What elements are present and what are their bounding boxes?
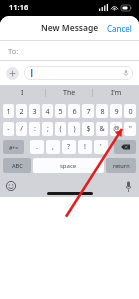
button[interactable]: 4 bbox=[42, 104, 53, 118]
button[interactable]: . bbox=[30, 140, 44, 154]
staticText: , bbox=[52, 142, 54, 152]
staticText: #+= bbox=[9, 144, 19, 151]
button[interactable]: 8 bbox=[96, 104, 108, 118]
staticText: 4 bbox=[45, 106, 50, 116]
staticText: 6 bbox=[72, 106, 77, 116]
button[interactable]: Emoji bbox=[6, 181, 16, 191]
button[interactable]: Backspace bbox=[114, 140, 136, 154]
staticText: / bbox=[20, 124, 23, 134]
staticText: 0 bbox=[128, 106, 133, 116]
button[interactable]: 2 bbox=[16, 104, 27, 118]
staticText: 7 bbox=[86, 106, 91, 116]
button[interactable]: #+= bbox=[3, 140, 24, 154]
other: Dictate bbox=[123, 70, 129, 76]
button[interactable]: : bbox=[29, 122, 40, 136]
button[interactable]: @ bbox=[110, 122, 122, 136]
button[interactable]: 6 bbox=[68, 104, 80, 118]
staticText: @ bbox=[113, 124, 120, 134]
staticText: 2 bbox=[19, 106, 24, 116]
staticText: 1 bbox=[6, 106, 11, 116]
staticText: New Message bbox=[41, 22, 99, 34]
button[interactable]: ABC bbox=[3, 158, 31, 173]
staticText: 9 bbox=[114, 106, 119, 116]
staticText: ( bbox=[59, 124, 62, 134]
button[interactable]: space bbox=[33, 158, 104, 173]
staticText: 5 bbox=[58, 106, 63, 116]
button[interactable]: Cancel bbox=[100, 19, 139, 38]
button[interactable]: 5 bbox=[55, 104, 66, 118]
button[interactable]: To: bbox=[0, 41, 139, 60]
staticText: return bbox=[113, 162, 130, 170]
button[interactable]: ( bbox=[55, 122, 66, 136]
button[interactable]: Add attachment bbox=[6, 67, 19, 80]
button[interactable]: ) bbox=[68, 122, 80, 136]
staticText: 3 bbox=[32, 106, 37, 116]
button[interactable]: I'm bbox=[93, 85, 139, 101]
staticText: ABC bbox=[12, 162, 23, 170]
button[interactable]: ? bbox=[62, 140, 76, 154]
staticText: ! bbox=[84, 142, 86, 152]
button[interactable]: The bbox=[46, 85, 92, 101]
button[interactable]: - bbox=[3, 122, 14, 136]
staticText: Cancel bbox=[107, 23, 132, 34]
staticText: ) bbox=[73, 124, 76, 134]
button[interactable]: 0 bbox=[124, 104, 136, 118]
staticText: $ bbox=[86, 124, 91, 134]
button[interactable]: 9 bbox=[110, 104, 122, 118]
staticText: - bbox=[7, 124, 10, 134]
button[interactable]: , bbox=[46, 140, 60, 154]
button[interactable]: 7 bbox=[82, 104, 94, 118]
staticText: ? bbox=[67, 142, 71, 152]
staticText: space bbox=[60, 162, 77, 170]
button[interactable]: / bbox=[16, 122, 27, 136]
staticText: & bbox=[99, 124, 105, 134]
button[interactable]: $ bbox=[82, 122, 94, 136]
button[interactable]: ; bbox=[42, 122, 53, 136]
staticText: : bbox=[34, 124, 36, 134]
button[interactable]: 1 bbox=[3, 104, 14, 118]
staticText: To: bbox=[8, 46, 19, 56]
button[interactable]: ! bbox=[78, 140, 92, 154]
button[interactable]: ' bbox=[94, 140, 108, 154]
staticText: I bbox=[21, 88, 24, 98]
staticText: 8 bbox=[100, 106, 105, 116]
staticText: 11:16 bbox=[9, 2, 29, 12]
button[interactable]: " bbox=[124, 122, 136, 136]
staticText: " bbox=[129, 124, 132, 134]
staticText: . bbox=[36, 142, 38, 152]
button[interactable]: Dictation bbox=[125, 181, 132, 192]
button[interactable]: I bbox=[0, 85, 45, 101]
button[interactable]: return bbox=[106, 158, 136, 173]
button[interactable]: & bbox=[96, 122, 108, 136]
staticText: I'm bbox=[111, 88, 122, 98]
staticText: ; bbox=[47, 124, 49, 134]
button[interactable]: Dictate bbox=[24, 66, 133, 80]
staticText: The bbox=[63, 88, 76, 98]
button[interactable]: 3 bbox=[29, 104, 40, 118]
staticText: ' bbox=[100, 142, 102, 152]
